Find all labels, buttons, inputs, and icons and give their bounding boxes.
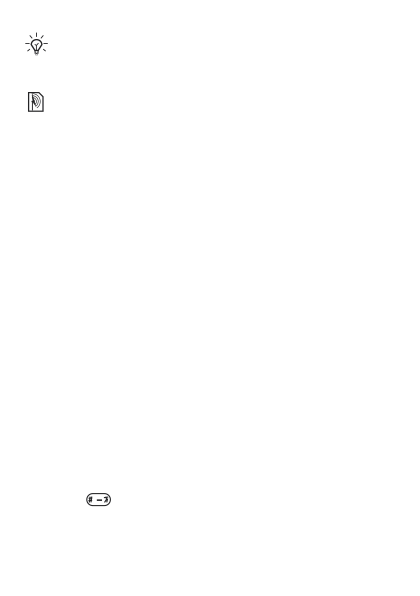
button[interactable]: Tip <box>0 31 26 57</box>
